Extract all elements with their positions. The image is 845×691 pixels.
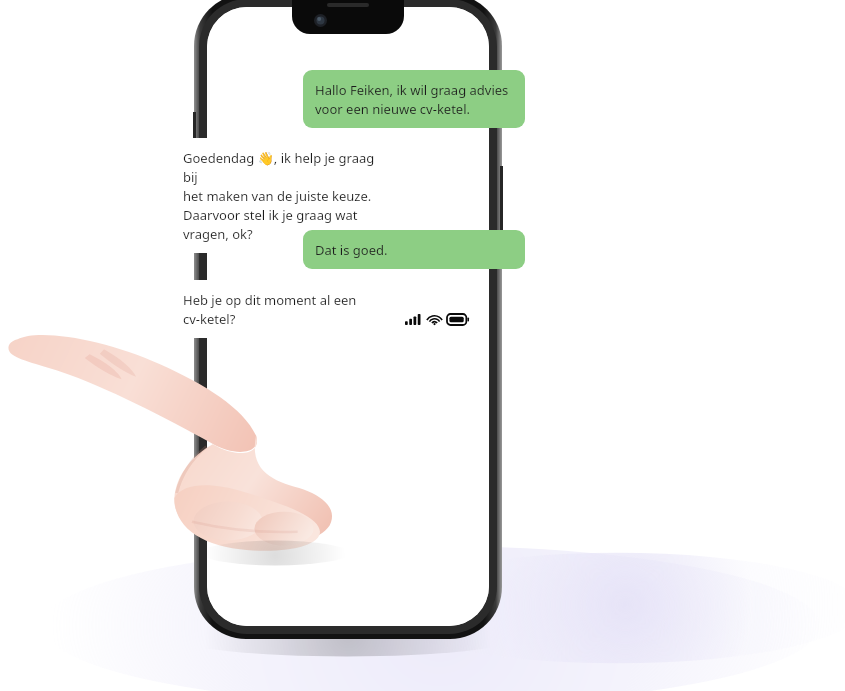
button[interactable]: Hallo Feiken, ik wil graag advies voor e… <box>303 70 525 128</box>
staticText: Dat is goed. <box>315 240 388 259</box>
staticText: 9:41 <box>231 310 259 329</box>
staticText: Goedendag 👋, ik help je graag bij het ma… <box>183 148 379 243</box>
button[interactable]: Heb je op dit moment al een cv-ketel? <box>171 280 391 338</box>
button[interactable]: Dat is goed. <box>303 230 525 269</box>
staticText: Hallo Feiken, ik wil graag advies voor e… <box>315 80 509 118</box>
staticText: Heb je op dit moment al een cv-ketel? <box>183 290 357 328</box>
button[interactable]: Goedendag 👋, ik help je graag bij het ma… <box>171 138 391 253</box>
